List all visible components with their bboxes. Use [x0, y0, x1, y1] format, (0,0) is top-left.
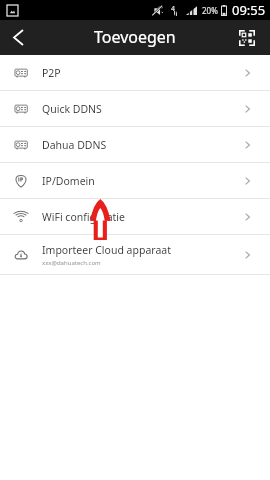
- button[interactable]: Scan QR code: [224, 20, 270, 55]
- staticText: IP/Domein: [42, 174, 95, 188]
- button[interactable]: IP/Domein: [0, 163, 270, 199]
- staticText: xxx@dahuatech.com: [42, 259, 101, 267]
- staticText: Dahua DDNS: [42, 138, 107, 152]
- button[interactable]: P2P: [0, 55, 270, 91]
- staticText: 4G: [171, 4, 180, 16]
- staticText: 20%: [202, 5, 218, 16]
- staticText: WiFi configuratie: [42, 210, 125, 224]
- staticText: 09:55: [232, 1, 266, 19]
- staticText: P2P: [42, 66, 61, 80]
- button[interactable]: Quick DDNS: [0, 91, 270, 127]
- button[interactable]: WiFi configuratie: [0, 199, 270, 235]
- button[interactable]: Dahua DDNS: [0, 127, 270, 163]
- staticText: Toevoegen: [94, 26, 176, 48]
- button[interactable]: Back: [0, 20, 36, 55]
- staticText: Quick DDNS: [42, 102, 102, 116]
- button[interactable]: Importeer Cloud apparaat: [0, 235, 270, 275]
- staticText: Importeer Cloud apparaat: [42, 243, 171, 257]
